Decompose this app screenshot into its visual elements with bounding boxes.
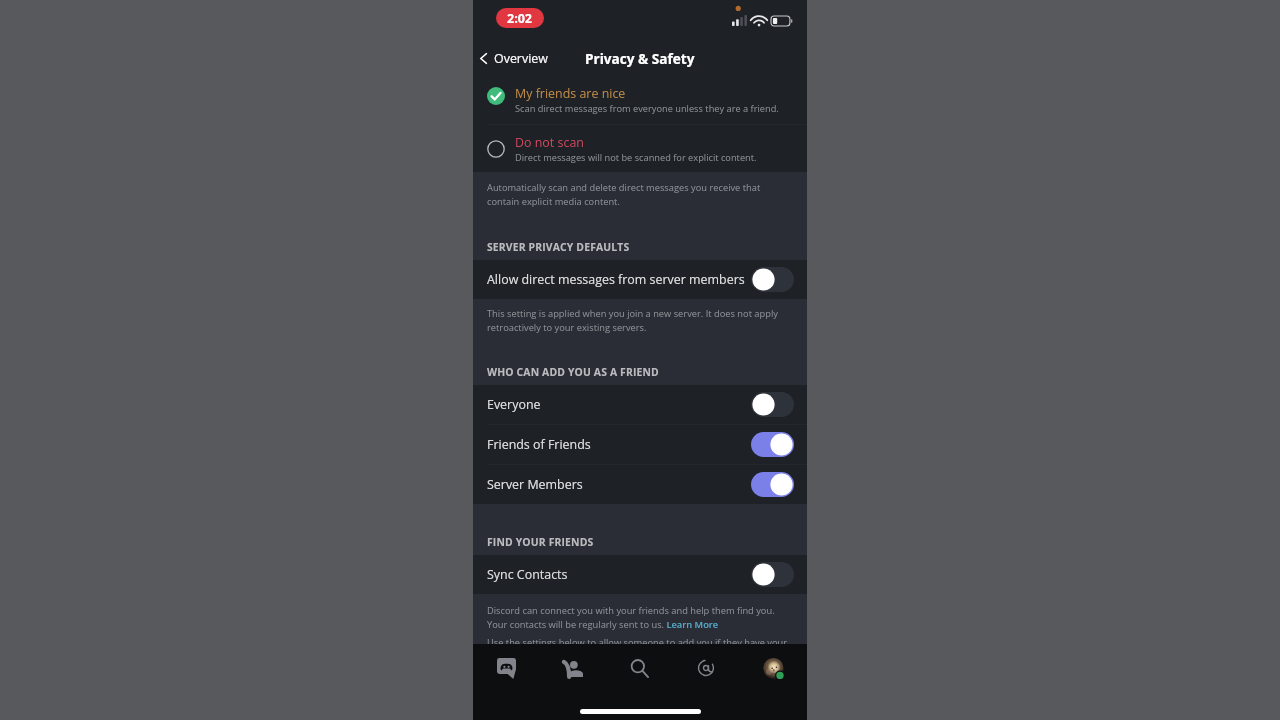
staticText: Overview	[494, 50, 548, 67]
button[interactable]: Overview	[473, 41, 554, 75]
button[interactable]: Disabled	[751, 267, 794, 292]
staticText: Do not scan	[515, 134, 584, 151]
button[interactable]: My friends are nice	[473, 75, 807, 124]
staticText: Server Members	[487, 476, 751, 493]
button[interactable]: Friends of Friends	[473, 425, 807, 464]
staticText: Automatically scan and delete direct mes…	[487, 181, 790, 207]
staticText: My friends are nice	[515, 85, 626, 102]
button[interactable]: Search	[606, 644, 673, 692]
staticText: FIND YOUR FRIENDS	[487, 535, 594, 549]
staticText: Sync Contacts	[487, 566, 751, 583]
button[interactable]: Everyone	[473, 385, 807, 424]
staticText: Scan direct messages from everyone unles…	[515, 102, 779, 115]
staticText: Everyone	[487, 396, 751, 413]
button[interactable]: Mentions	[673, 644, 740, 692]
staticText: Direct messages will not be scanned for …	[515, 151, 757, 164]
staticText: Friends of Friends	[487, 436, 751, 453]
button[interactable]: Allow direct messages from server member…	[473, 260, 807, 299]
button[interactable]: Do not scan	[473, 125, 807, 172]
staticText: Discord can connect you with your friend…	[487, 604, 790, 630]
staticText: SERVER PRIVACY DEFAULTS	[487, 240, 630, 254]
button[interactable]: Server Members	[473, 465, 807, 504]
button[interactable]: Disabled	[751, 392, 794, 417]
staticText: WHO CAN ADD YOU AS A FRIEND	[487, 365, 659, 379]
button[interactable]: Enabled	[751, 432, 794, 457]
button[interactable]: Enabled	[751, 472, 794, 497]
button[interactable]: Servers	[473, 644, 539, 692]
staticText: Allow direct messages from server member…	[487, 271, 751, 288]
button[interactable]: Friends	[539, 644, 606, 692]
button[interactable]: Profile	[740, 644, 807, 692]
staticText: 2:02	[507, 10, 533, 27]
staticText: Privacy & Safety	[585, 49, 695, 68]
staticText: This setting is applied when you join a …	[487, 307, 790, 333]
button[interactable]: Sync Contacts	[473, 555, 807, 594]
staticText: Use the settings below to allow someone …	[487, 636, 790, 644]
button[interactable]: Disabled	[751, 562, 794, 587]
